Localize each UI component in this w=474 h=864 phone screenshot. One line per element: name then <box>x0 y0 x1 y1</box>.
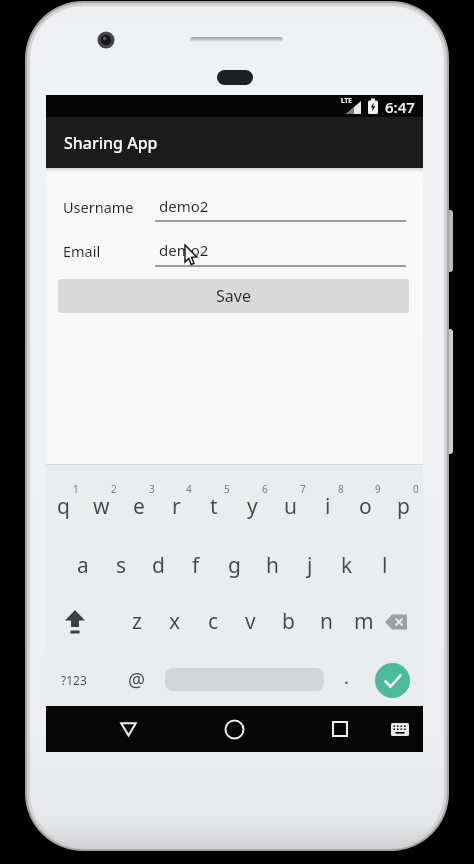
staticText: v <box>245 607 256 636</box>
staticText: z <box>132 607 142 636</box>
button[interactable]: u <box>260 486 320 526</box>
button[interactable]: k <box>317 545 377 585</box>
staticText: y <box>247 492 258 521</box>
button[interactable]: demo2 <box>155 190 406 220</box>
button[interactable] <box>63 609 87 635</box>
staticText: p <box>397 492 410 521</box>
staticText: Username <box>63 197 134 217</box>
button[interactable]: q <box>33 486 93 526</box>
button[interactable]: w <box>71 486 131 526</box>
staticText: w <box>93 492 110 521</box>
button[interactable] <box>224 719 245 740</box>
button[interactable]: b <box>258 601 318 641</box>
button[interactable]: x <box>145 601 205 641</box>
staticText: 8 <box>338 482 344 496</box>
button[interactable]: 5 <box>197 469 257 509</box>
staticText: b <box>282 607 295 636</box>
button[interactable]: p <box>373 486 433 526</box>
staticText: d <box>152 551 165 580</box>
staticText: q <box>57 492 70 521</box>
staticText: j <box>307 551 313 580</box>
staticText: i <box>325 492 331 521</box>
staticText: 1 <box>73 482 79 496</box>
button[interactable]: 8 <box>311 469 371 509</box>
staticText: 9 <box>375 482 381 496</box>
staticText: o <box>359 492 372 521</box>
button[interactable]: 1 <box>46 469 106 509</box>
button[interactable] <box>375 663 410 698</box>
button[interactable]: 9 <box>348 469 408 509</box>
button[interactable]: m <box>334 601 394 641</box>
staticText: n <box>320 607 333 636</box>
staticText: demo2 <box>159 196 209 216</box>
button[interactable] <box>120 722 137 737</box>
staticText: . <box>344 665 349 690</box>
staticText: 5 <box>224 482 230 496</box>
staticText: r <box>172 492 181 521</box>
button[interactable]: v <box>220 601 280 641</box>
button[interactable]: ?123 <box>44 660 104 700</box>
staticText: m <box>354 607 374 636</box>
button[interactable]: l <box>355 545 415 585</box>
staticText: l <box>382 551 388 580</box>
staticText: 4 <box>186 482 192 496</box>
button[interactable]: 3 <box>122 469 182 509</box>
button[interactable]: h <box>242 545 302 585</box>
staticText: Sharing App <box>64 132 158 154</box>
staticText: @ <box>128 667 146 693</box>
staticText: LTE <box>341 96 352 105</box>
staticText: 2 <box>111 482 117 496</box>
button[interactable]: 6 <box>235 469 295 509</box>
staticText: demo2 <box>159 240 209 260</box>
staticText: t <box>210 492 218 521</box>
button[interactable]: o <box>335 486 395 526</box>
staticText: c <box>208 607 219 636</box>
staticText: x <box>169 607 181 636</box>
button[interactable]: d <box>128 545 188 585</box>
staticText: h <box>266 551 279 580</box>
staticText: s <box>116 551 127 580</box>
button[interactable]: @ <box>107 660 167 700</box>
staticText: a <box>77 551 89 580</box>
staticText: 7 <box>300 482 306 496</box>
staticText: 6 <box>262 482 268 496</box>
button[interactable]: g <box>204 545 264 585</box>
staticText: f <box>192 551 200 580</box>
button[interactable]: y <box>222 486 282 526</box>
staticText: e <box>133 492 145 521</box>
button[interactable]: demo2 <box>155 234 406 264</box>
button[interactable]: 0 <box>386 469 446 509</box>
button[interactable]: i <box>298 486 358 526</box>
staticText: Save <box>216 285 251 307</box>
button[interactable]: j <box>280 545 340 585</box>
staticText: 3 <box>149 482 155 496</box>
button[interactable]: Save <box>58 279 409 313</box>
button[interactable] <box>332 721 348 737</box>
staticText: ?123 <box>61 672 87 688</box>
staticText: Email <box>63 241 101 261</box>
button[interactable]: f <box>166 545 226 585</box>
button[interactable]: 4 <box>159 469 219 509</box>
button[interactable]: . <box>316 657 376 697</box>
button[interactable] <box>384 613 410 633</box>
button[interactable]: z <box>107 601 167 641</box>
button[interactable] <box>391 723 409 736</box>
staticText: k <box>341 551 353 580</box>
button[interactable]: e <box>109 486 169 526</box>
staticText: u <box>284 492 297 521</box>
button[interactable]: t <box>184 486 244 526</box>
button[interactable]: c <box>183 601 243 641</box>
button[interactable]: a <box>53 545 113 585</box>
staticText: 0 <box>413 482 419 496</box>
button[interactable]: 7 <box>273 469 333 509</box>
button[interactable]: s <box>91 545 151 585</box>
staticText: g <box>228 551 241 580</box>
button[interactable]: n <box>296 601 356 641</box>
button[interactable]: r <box>146 486 206 526</box>
staticText: 6:47 <box>385 97 415 117</box>
button[interactable]: 2 <box>84 469 144 509</box>
